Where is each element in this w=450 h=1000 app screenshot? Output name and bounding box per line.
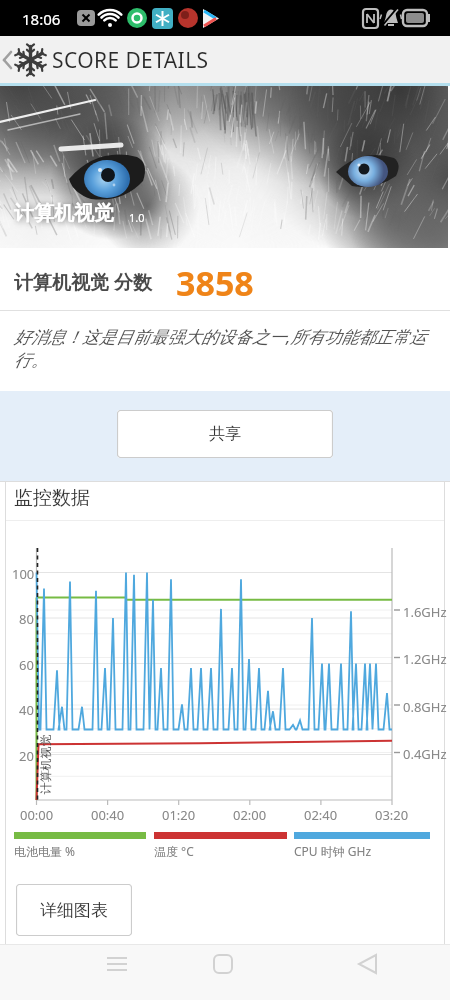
- staticText: 计算机视觉: [37, 734, 52, 794]
- staticText: 电池电量 %: [14, 843, 76, 859]
- staticText: 详细图表: [40, 900, 108, 921]
- staticText: CPU 时钟 GHz: [294, 843, 372, 859]
- staticText: 监控数据: [14, 486, 90, 510]
- staticText: 03:20: [375, 806, 409, 824]
- staticText: 18:06: [22, 9, 61, 29]
- button[interactable]: [193, 944, 253, 1000]
- staticText: 计算机视觉: [14, 201, 114, 226]
- staticText: 0.8GHz: [403, 698, 447, 716]
- staticText: 00:00: [20, 806, 54, 824]
- staticText: 计算机视觉 分数: [14, 269, 152, 295]
- button[interactable]: [338, 944, 398, 1000]
- staticText: 温度 °C: [154, 843, 194, 859]
- staticText: 02:00: [233, 806, 267, 824]
- staticText: 02:40: [304, 806, 338, 824]
- staticText: 20: [19, 747, 34, 765]
- staticText: 1.6GHz: [403, 603, 447, 621]
- staticText: SCORE DETAILS: [52, 46, 209, 75]
- staticText: 00:40: [91, 806, 125, 824]
- staticText: 共享: [209, 424, 241, 444]
- staticText: 行。: [14, 350, 48, 371]
- staticText: 1.0: [129, 210, 145, 225]
- staticText: 好消息！这是目前最强大的设备之一,所有功能都正常运: [14, 325, 427, 348]
- staticText: 01:20: [162, 806, 196, 824]
- button[interactable]: 共享: [117, 410, 333, 458]
- staticText: 3858: [176, 260, 254, 306]
- staticText: 0.4GHz: [403, 745, 447, 763]
- button[interactable]: [87, 944, 147, 1000]
- staticText: 1.2GHz: [403, 650, 447, 668]
- staticText: 40: [19, 701, 34, 719]
- staticText: 80: [19, 610, 34, 628]
- staticText: 60: [19, 656, 34, 674]
- staticText: 100: [12, 565, 35, 583]
- button[interactable]: 详细图表: [16, 884, 132, 936]
